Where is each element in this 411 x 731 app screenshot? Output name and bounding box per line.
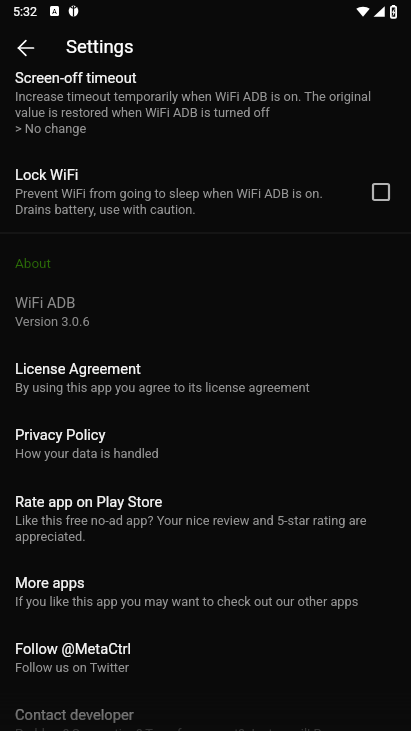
staticText: Screen-off timeout	[15, 69, 137, 86]
button[interactable]: Back	[6, 28, 46, 68]
button[interactable]: Rate app on Play Store	[0, 492, 411, 573]
staticText: About	[15, 255, 51, 271]
button[interactable]: Screen-off timeout	[0, 68, 411, 164]
staticText: Problem? Suggestion? Transfer request? J…	[15, 726, 381, 731]
staticText: Follow us on Twitter	[15, 660, 130, 675]
button[interactable]: Contact developer	[0, 705, 411, 731]
staticText: 5:32	[13, 4, 38, 19]
staticText: Prevent WiFi from going to sleep when Wi…	[15, 186, 323, 217]
staticText: Version 3.0.6	[15, 314, 90, 329]
staticText: Follow @MetaCtrl	[15, 640, 132, 657]
button[interactable]: Lock WiFi	[0, 165, 411, 233]
staticText: By using this app you agree to its licen…	[15, 380, 310, 395]
staticText: Settings	[66, 36, 134, 58]
staticText: Increase timeout temporarily when WiFi A…	[15, 89, 381, 136]
staticText: How your data is handled	[15, 446, 159, 461]
staticText: WiFi ADB	[15, 294, 76, 311]
staticText: Privacy Policy	[15, 426, 106, 443]
button[interactable]: Follow @MetaCtrl	[0, 639, 411, 705]
staticText: Lock WiFi	[15, 166, 79, 183]
button[interactable]: WiFi ADB	[0, 293, 411, 359]
staticText: Like this free no-ad app? Your nice revi…	[15, 513, 381, 544]
staticText: Contact developer	[15, 706, 134, 723]
staticText: License Agreement	[15, 360, 141, 377]
staticText: Rate app on Play Store	[15, 493, 163, 510]
staticText: If you like this app you may want to che…	[15, 594, 359, 609]
button[interactable]: License Agreement	[0, 359, 411, 425]
button[interactable]: Privacy Policy	[0, 425, 411, 491]
button[interactable]: More apps	[0, 573, 411, 639]
staticText: A	[52, 7, 57, 16]
staticText: More apps	[15, 574, 85, 591]
